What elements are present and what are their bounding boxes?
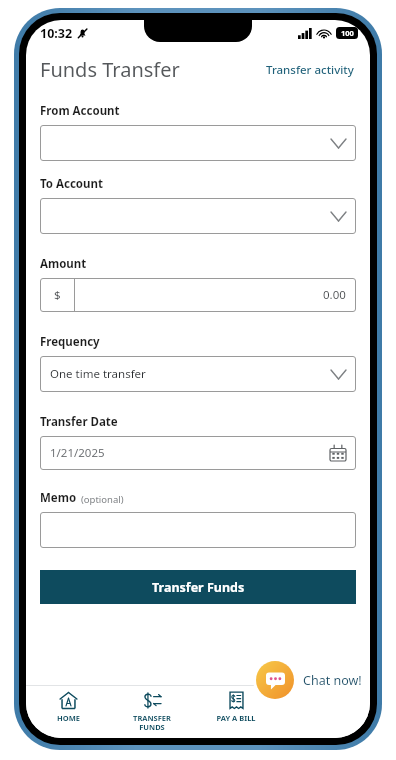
staticText: Amount — [40, 256, 87, 272]
staticText: $ — [54, 287, 61, 303]
staticText: HOME — [57, 713, 80, 723]
staticText: 10:32 — [40, 25, 73, 42]
other: Pick date — [330, 445, 346, 461]
staticText: TRANSFER FUNDS — [133, 713, 171, 732]
staticText: PAY A BILL — [216, 713, 256, 723]
button[interactable] — [40, 125, 356, 161]
staticText: Transfer Date — [40, 414, 118, 430]
staticText: To Account — [40, 176, 103, 192]
button[interactable] — [40, 512, 356, 548]
staticText: Funds Transfer — [40, 56, 180, 83]
staticText: 1/21/2025 — [50, 445, 105, 461]
staticText: (optional) — [81, 493, 124, 506]
staticText: 0.00 — [323, 287, 346, 303]
button[interactable]: HOME — [26, 686, 110, 723]
staticText: Transfer Funds — [152, 579, 245, 596]
button[interactable] — [40, 198, 356, 234]
button[interactable]: Transfer activity — [264, 58, 356, 82]
button[interactable]: TRANSFER FUNDS — [110, 686, 194, 732]
button[interactable]: $ — [40, 278, 356, 312]
staticText: One time transfer — [50, 366, 146, 382]
staticText: Chat now! — [303, 672, 362, 689]
staticText: 100 — [341, 28, 354, 38]
button[interactable]: Chat — [253, 658, 370, 702]
staticText: From Account — [40, 103, 120, 119]
staticText: Memo — [40, 490, 77, 506]
button[interactable]: Transfer Funds — [40, 570, 356, 604]
button[interactable]: 1/21/2025 — [40, 436, 356, 470]
staticText: Transfer activity — [266, 62, 354, 78]
button[interactable]: One time transfer — [40, 356, 356, 392]
other: Chat — [256, 661, 294, 699]
staticText: Frequency — [40, 334, 100, 350]
button[interactable]: PAY A BILL — [194, 686, 278, 723]
